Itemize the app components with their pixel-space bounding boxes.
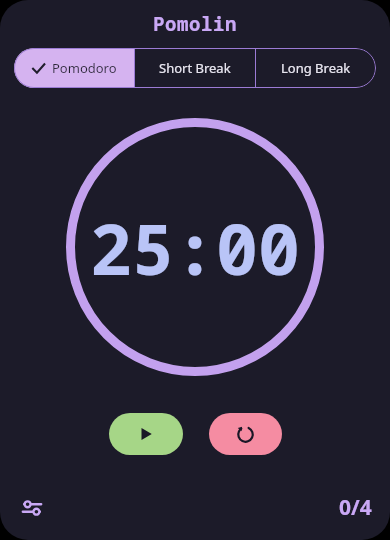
button[interactable]: Settings <box>14 490 50 526</box>
button[interactable]: Start timer <box>109 413 183 455</box>
button[interactable]: Pomodoro <box>14 48 134 88</box>
staticText: 0/4 <box>339 493 372 522</box>
button[interactable]: Reset timer <box>209 413 282 455</box>
staticText: Short Break <box>159 59 231 77</box>
staticText: Pomolin <box>0 11 390 37</box>
staticText: 25:00 <box>90 200 300 295</box>
staticText: Pomodoro <box>52 59 117 77</box>
staticText: Long Break <box>281 59 351 77</box>
button[interactable]: Short Break <box>135 48 255 88</box>
button[interactable]: Long Break <box>256 48 376 88</box>
